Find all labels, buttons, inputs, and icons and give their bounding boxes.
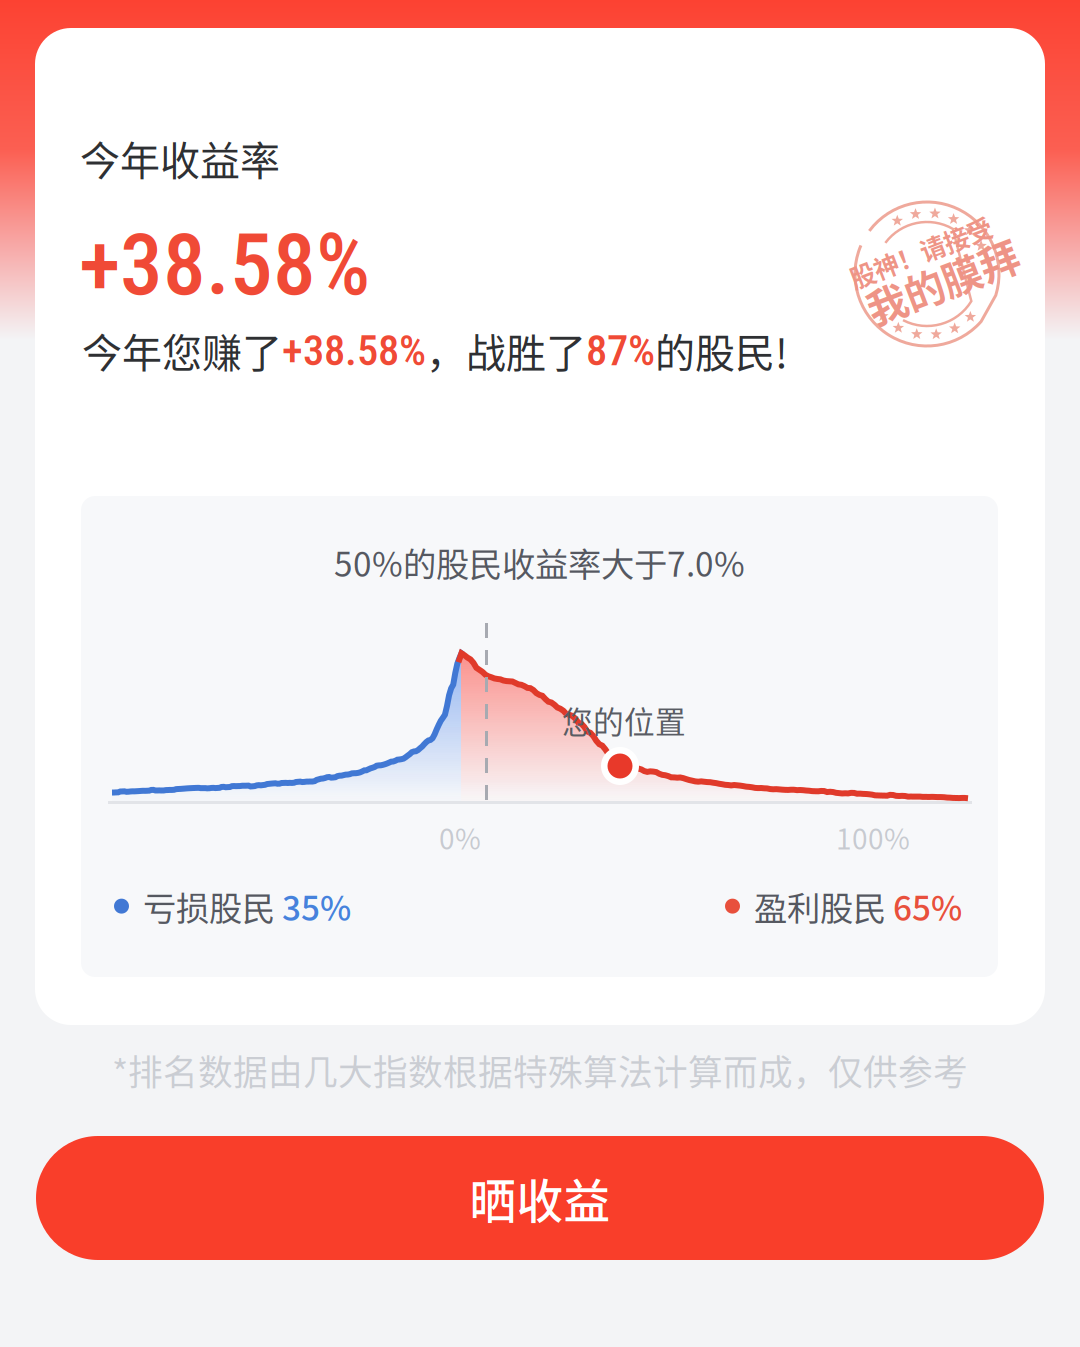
staticText: 晒收益 bbox=[469, 1164, 610, 1232]
staticText: 您的位置 bbox=[562, 698, 686, 742]
staticText: 今年您赚了+38.58%，战胜了87%的股民! bbox=[82, 322, 788, 378]
staticText: 0% bbox=[439, 817, 481, 857]
staticText: 50%的股民收益率大于7.0% bbox=[334, 538, 745, 586]
staticText: 今年收益率 bbox=[80, 129, 280, 187]
staticText: 股神！请接受 bbox=[854, 233, 1004, 269]
staticText: 35% bbox=[282, 882, 351, 930]
staticText: 100% bbox=[836, 817, 910, 857]
button[interactable]: 晒收益 bbox=[36, 1136, 1044, 1260]
staticText: 亏损股民 bbox=[129, 882, 282, 930]
staticText: 盈利股民 bbox=[740, 882, 893, 930]
staticText: 我的膜拜 bbox=[859, 257, 1019, 315]
staticText: +38.58% bbox=[79, 215, 370, 315]
staticText: *排名数据由几大指数根据特殊算法计算而成，仅供参考 bbox=[112, 1045, 968, 1095]
staticText: 65% bbox=[893, 882, 962, 930]
